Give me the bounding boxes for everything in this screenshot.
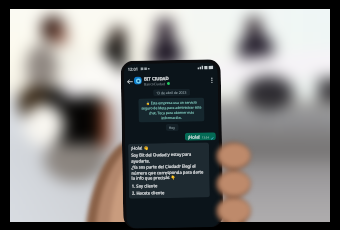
button[interactable]: Back (126, 78, 133, 85)
staticText: ¡Hola! 👋 (131, 145, 149, 152)
staticText: Soy Bit del Ciudad y estoy para ayudarte… (131, 151, 206, 164)
staticText: 12:01 (128, 67, 139, 72)
staticText: 13 de abril de 2023 (156, 90, 187, 95)
staticText: ¡Hola! (188, 133, 200, 140)
staticText: BIT CIUDAD (144, 75, 169, 81)
staticText: 🔒 Esta empresa usa un servicio seguro de… (141, 99, 201, 120)
staticText: Hoy (169, 125, 176, 130)
button[interactable]: More options (208, 76, 215, 83)
staticText: 2. Hacete cliente (132, 190, 165, 197)
staticText: 13:54 (202, 135, 210, 139)
staticText: 1. Soy cliente (132, 183, 158, 190)
staticText: BancoCiudad (144, 81, 166, 86)
staticText: ¿Ya sos parte del Ciudad? Elegí el númer… (131, 163, 207, 181)
